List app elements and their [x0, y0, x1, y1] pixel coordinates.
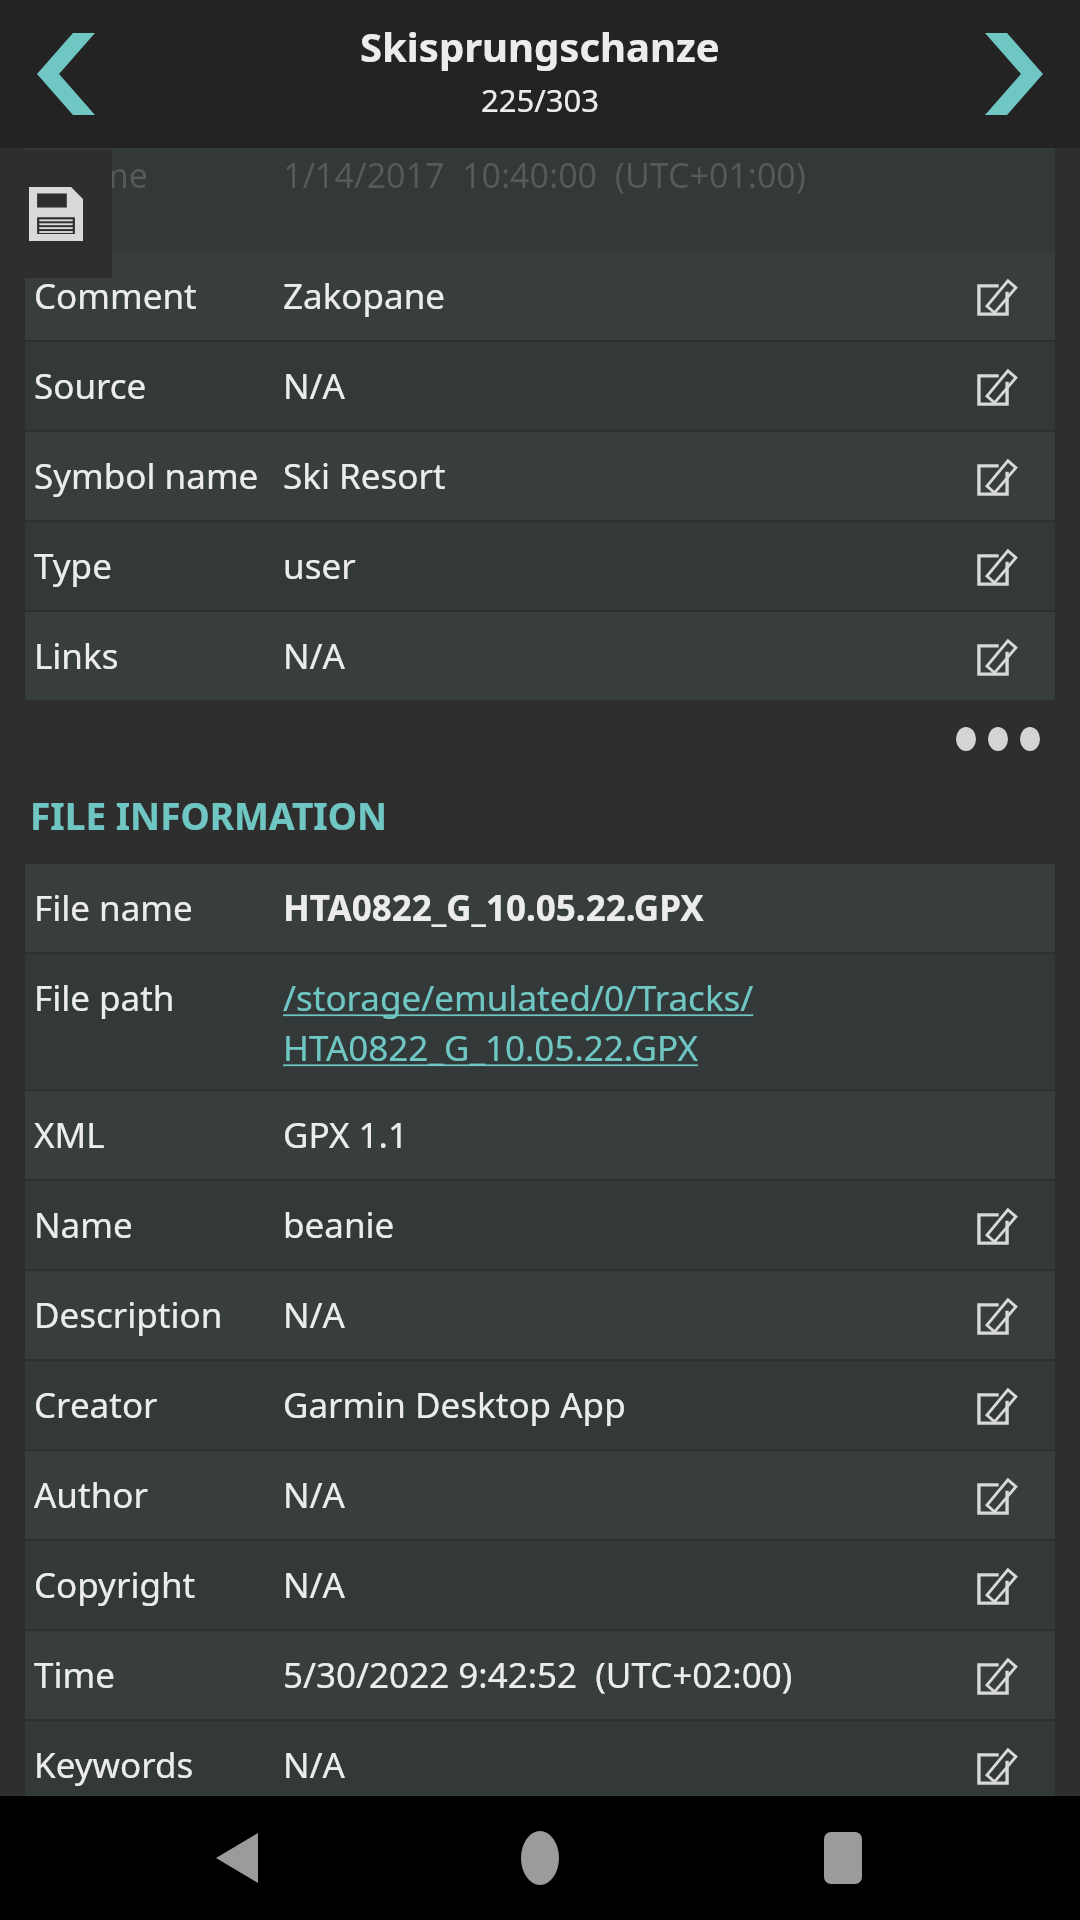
- button[interactable]: File name: [25, 864, 1055, 952]
- button[interactable]: Edit Source: [969, 358, 1025, 414]
- button[interactable]: Edit Links: [969, 628, 1025, 684]
- button[interactable]: Edit Name: [969, 1197, 1025, 1253]
- button[interactable]: Links: [25, 612, 1055, 700]
- staticText: File path: [34, 974, 175, 1022]
- button[interactable]: Previous: [10, 18, 122, 130]
- button[interactable]: Time: [25, 1631, 1055, 1719]
- staticText: FILE INFORMATION: [30, 790, 388, 840]
- staticText: /storage/emulated/0/Tracks/: [283, 974, 754, 1022]
- button[interactable]: Edit Symbol name: [969, 448, 1025, 504]
- button[interactable]: Save: [0, 150, 112, 278]
- staticText: N/A: [283, 1741, 345, 1789]
- button[interactable]: More options: [944, 715, 1052, 763]
- staticText: Author: [34, 1471, 148, 1519]
- staticText: XML: [34, 1111, 105, 1159]
- staticText: user: [283, 542, 356, 590]
- staticText: beanie: [283, 1201, 395, 1249]
- staticText: N/A: [283, 1471, 345, 1519]
- staticText: Description: [34, 1291, 223, 1339]
- staticText: Comment: [34, 272, 197, 320]
- staticText: 225/303: [481, 79, 599, 121]
- button[interactable]: Description: [25, 1271, 1055, 1359]
- button[interactable]: Edit Creator: [969, 1377, 1025, 1433]
- staticText: N/A: [283, 1561, 345, 1609]
- staticText: Symbol name: [34, 452, 259, 500]
- staticText: HTA0822_G_10.05.22.GPX: [283, 884, 704, 932]
- button[interactable]: Author: [25, 1451, 1055, 1539]
- staticText: GPX 1.1: [283, 1111, 408, 1159]
- button[interactable]: Name: [25, 1181, 1055, 1269]
- button[interactable]: Edit Type: [969, 538, 1025, 594]
- button[interactable]: Creator: [25, 1361, 1055, 1449]
- button[interactable]: XML: [25, 1091, 1055, 1179]
- button[interactable]: Back: [171, 1796, 303, 1920]
- button[interactable]: File path: [25, 954, 1055, 1089]
- button[interactable]: Home: [474, 1796, 606, 1920]
- button[interactable]: Edit Time: [969, 1647, 1025, 1703]
- staticText: 5/30/2022 9:42:52 (UTC+02:00): [283, 1651, 793, 1699]
- button[interactable]: Edit Author: [969, 1467, 1025, 1523]
- staticText: Keywords: [34, 1741, 194, 1789]
- staticText: File name: [34, 884, 193, 932]
- staticText: Name: [34, 1201, 133, 1249]
- staticText: Links: [34, 632, 119, 680]
- staticText: HTA0822_G_10.05.22.GPX: [283, 1024, 698, 1072]
- staticText: Copyright: [34, 1561, 196, 1609]
- button[interactable]: Edit Description: [969, 1287, 1025, 1343]
- staticText: Time: [34, 1651, 115, 1699]
- button[interactable]: Source: [25, 342, 1055, 430]
- button[interactable]: Keywords: [25, 1721, 1055, 1796]
- button[interactable]: Type: [25, 522, 1055, 610]
- staticText: N/A: [283, 362, 345, 410]
- staticText: Skisprungschanze: [360, 19, 720, 73]
- staticText: N/A: [283, 632, 345, 680]
- staticText: Creator: [34, 1381, 158, 1429]
- button[interactable]: Next: [958, 18, 1070, 130]
- staticText: N/A: [283, 1291, 345, 1339]
- staticText: Source: [34, 362, 147, 410]
- staticText: Garmin Desktop App: [283, 1381, 626, 1429]
- staticText: Ski Resort: [283, 452, 446, 500]
- staticText: 1/14/2017 10:40:00 (UTC+01:00): [283, 152, 807, 198]
- button[interactable]: Recents: [777, 1796, 909, 1920]
- button[interactable]: Comment: [25, 252, 1055, 340]
- staticText: Type: [34, 542, 112, 590]
- button[interactable]: Edit Copyright: [969, 1557, 1025, 1613]
- button[interactable]: Edit Comment: [969, 268, 1025, 324]
- staticText: ar time: [34, 152, 148, 198]
- button[interactable]: Copyright: [25, 1541, 1055, 1629]
- button[interactable]: Edit Keywords: [969, 1737, 1025, 1793]
- button[interactable]: Symbol name: [25, 432, 1055, 520]
- staticText: Zakopane: [283, 272, 446, 320]
